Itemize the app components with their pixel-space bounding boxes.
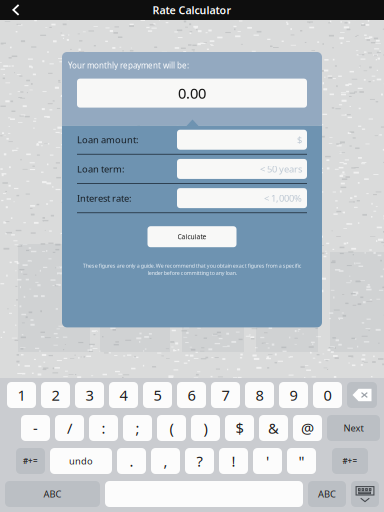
staticText: 6	[187, 385, 195, 405]
button[interactable]: ;	[123, 415, 152, 441]
staticText: < 50 years	[260, 163, 302, 175]
staticText: Calculate	[177, 232, 206, 241]
button[interactable]: $	[225, 415, 254, 441]
staticText: 3	[85, 385, 93, 405]
staticText: "	[298, 451, 304, 471]
staticText: '	[266, 451, 269, 471]
button[interactable]: 5	[143, 382, 172, 408]
staticText: .	[129, 451, 133, 471]
button[interactable]: < 50 years	[177, 159, 307, 179]
staticText: < 1,000%	[264, 192, 302, 204]
staticText: 7	[221, 385, 229, 405]
staticText: Rate Calculator	[152, 3, 231, 17]
staticText: 1	[17, 385, 25, 405]
staticText: undo	[69, 455, 93, 467]
button[interactable]: Symbols	[16, 448, 45, 474]
staticText: ?	[196, 451, 202, 471]
button[interactable]: Calculate	[147, 226, 236, 247]
button[interactable]: )	[191, 415, 220, 441]
button[interactable]: .	[117, 448, 146, 474]
staticText: Loan amount:	[77, 133, 139, 146]
button[interactable]: !	[219, 448, 248, 474]
button[interactable]: /	[55, 415, 84, 441]
button[interactable]: @	[293, 415, 322, 441]
staticText: -	[33, 418, 38, 438]
button[interactable]: ?	[185, 448, 214, 474]
button[interactable]: 6	[177, 382, 206, 408]
button[interactable]: "	[287, 448, 316, 474]
button[interactable]: 3	[75, 382, 104, 408]
staticText: ,	[163, 451, 167, 471]
staticText: 0.00	[178, 83, 206, 103]
button[interactable]: Delete	[347, 382, 377, 408]
staticText: #+=	[342, 456, 357, 466]
staticText: Your monthly repayment will be:	[68, 60, 189, 71]
button[interactable]: Next	[327, 415, 380, 441]
button[interactable]: &	[259, 415, 288, 441]
staticText: Loan term:	[77, 163, 125, 175]
staticText: (	[169, 418, 173, 438]
button[interactable]: 4	[109, 382, 138, 408]
button[interactable]: $	[177, 130, 307, 150]
button[interactable]: Symbols	[332, 448, 368, 474]
button[interactable]: ,	[151, 448, 180, 474]
button[interactable]: undo	[50, 448, 112, 474]
button[interactable]: (	[157, 415, 186, 441]
button[interactable]: Hide keyboard	[351, 481, 379, 507]
staticText: Interest rate:	[77, 192, 132, 204]
staticText: These figures are only a guide. We recom…	[82, 262, 301, 276]
staticText: !	[231, 451, 235, 471]
staticText: &	[268, 418, 279, 438]
staticText: 0	[323, 385, 331, 405]
button[interactable]: 2	[41, 382, 70, 408]
staticText: #+=	[23, 456, 38, 466]
staticText: 5	[153, 385, 161, 405]
button[interactable]: 8	[245, 382, 274, 408]
staticText: ABC	[43, 488, 61, 500]
button[interactable]: -	[21, 415, 50, 441]
button[interactable]: ABC	[5, 481, 100, 507]
staticText: 2	[51, 385, 59, 405]
button[interactable]: ABC	[308, 481, 346, 507]
button[interactable]: 7	[211, 382, 240, 408]
button[interactable]: '	[253, 448, 282, 474]
staticText: 8	[255, 385, 263, 405]
staticText: ABC	[318, 488, 336, 500]
staticText: )	[203, 418, 207, 438]
staticText: /	[67, 418, 72, 438]
staticText: @	[301, 418, 314, 438]
button[interactable]: Back	[0, 0, 32, 20]
button[interactable]: :	[89, 415, 118, 441]
staticText: 4	[119, 385, 127, 405]
button[interactable]: 1	[7, 382, 36, 408]
staticText: $	[297, 133, 302, 146]
staticText: :	[101, 418, 105, 438]
staticText: $	[235, 418, 243, 438]
staticText: 9	[289, 385, 297, 405]
staticText: ;	[135, 418, 139, 438]
staticText: Next	[343, 422, 363, 434]
button[interactable]: 9	[279, 382, 308, 408]
button[interactable]: 0	[313, 382, 342, 408]
button[interactable]: < 1,000%	[177, 188, 307, 208]
